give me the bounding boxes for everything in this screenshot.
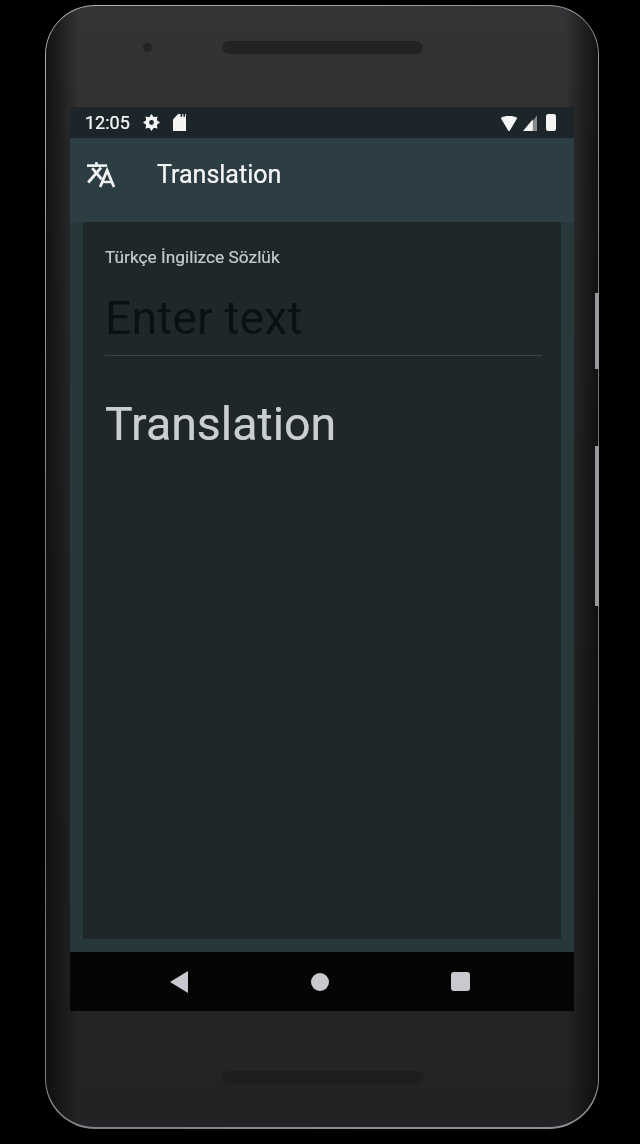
staticText: Translation (157, 160, 282, 189)
staticText: 12:05 (85, 112, 130, 133)
button[interactable]: Enter text (105, 291, 542, 345)
button[interactable]: Recent apps (430, 952, 490, 1011)
staticText: Türkçe İngilizce Sözlük (105, 247, 280, 267)
button[interactable]: Translate (76, 150, 124, 198)
staticText: Translation (105, 397, 337, 451)
button[interactable]: Home (290, 952, 350, 1011)
button[interactable]: Back (149, 952, 209, 1011)
